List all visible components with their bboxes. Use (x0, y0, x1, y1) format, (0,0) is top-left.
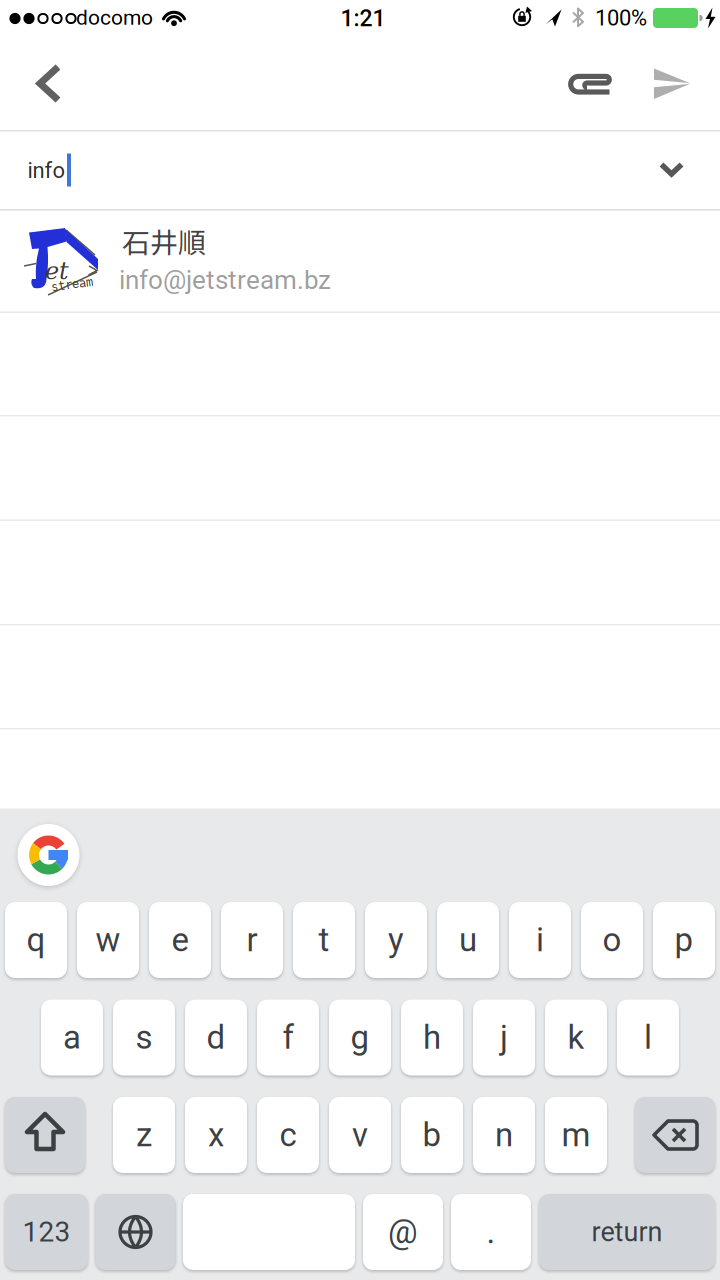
staticText: 123 (22, 1216, 70, 1248)
staticText: d (206, 1018, 225, 1057)
staticText: return (591, 1216, 662, 1248)
button[interactable]: Attach file (557, 54, 617, 114)
staticText: w (95, 921, 120, 959)
button[interactable]: e (149, 902, 211, 978)
button[interactable]: l (617, 999, 679, 1075)
button[interactable]: k (545, 999, 607, 1075)
button[interactable]: a (41, 999, 103, 1075)
staticText: docomo (76, 5, 153, 30)
staticText: n (495, 1116, 513, 1154)
staticText: i (536, 921, 544, 959)
staticText: x (208, 1116, 224, 1154)
staticText: g (350, 1018, 369, 1057)
staticText: t (318, 921, 329, 959)
button[interactable]: z (113, 1097, 175, 1173)
button[interactable]: et (0, 210, 720, 312)
staticText: 石井順 (122, 221, 206, 261)
button[interactable]: d (185, 999, 247, 1075)
button[interactable]: q (5, 902, 67, 978)
button[interactable]: x (185, 1097, 247, 1173)
staticText: m (561, 1116, 590, 1154)
staticText: b (422, 1116, 441, 1154)
staticText: v (352, 1116, 368, 1154)
button[interactable]: m (545, 1097, 607, 1173)
staticText: a (63, 1018, 81, 1057)
button[interactable]: w (77, 902, 139, 978)
button[interactable]: @ (363, 1194, 443, 1270)
staticText: u (459, 921, 477, 959)
staticText: . (486, 1213, 495, 1251)
staticText: l (644, 1018, 652, 1057)
staticText: e (171, 921, 188, 959)
button[interactable]: h (401, 999, 463, 1075)
button[interactable]: Return (539, 1194, 715, 1270)
staticText: p (674, 921, 693, 959)
staticText: h (423, 1018, 441, 1057)
staticText: y (388, 921, 404, 959)
button[interactable]: p (653, 902, 715, 978)
button[interactable]: r (221, 902, 283, 978)
button[interactable]: Shift (5, 1097, 85, 1173)
staticText: o (602, 921, 621, 959)
staticText: 1:21 (340, 5, 385, 32)
button[interactable]: g (329, 999, 391, 1075)
staticText: info (27, 158, 65, 183)
staticText: r (246, 921, 257, 959)
button[interactable]: o (581, 902, 643, 978)
button[interactable]: Send (642, 54, 702, 114)
staticText: @ (388, 1213, 418, 1251)
button[interactable]: Back (19, 53, 79, 113)
staticText: et (45, 257, 69, 285)
staticText: q (26, 921, 45, 959)
button[interactable]: y (365, 902, 427, 978)
button[interactable]: To field (0, 131, 720, 209)
staticText: c (279, 1116, 296, 1154)
button[interactable]: u (437, 902, 499, 978)
button[interactable]: Next keyboard (95, 1194, 175, 1270)
button[interactable]: Numbers (5, 1194, 88, 1270)
button[interactable]: f (257, 999, 319, 1075)
staticText: z (136, 1116, 152, 1154)
staticText: f (282, 1018, 293, 1057)
staticText: 100% (595, 5, 647, 31)
button[interactable]: t (293, 902, 355, 978)
button[interactable]: b (401, 1097, 463, 1173)
button[interactable]: j (473, 999, 535, 1075)
button[interactable]: . (451, 1194, 531, 1270)
staticText: info@jetstream.bz (119, 265, 331, 295)
staticText: s (135, 1018, 152, 1057)
button[interactable]: Delete (635, 1097, 715, 1173)
button[interactable]: n (473, 1097, 535, 1173)
button[interactable]: Expand recipient fields (651, 154, 691, 184)
staticText: j (500, 1018, 508, 1057)
button[interactable]: i (509, 902, 571, 978)
button[interactable]: Google (17, 824, 79, 886)
button[interactable]: s (113, 999, 175, 1075)
staticText: stream (51, 277, 93, 291)
button[interactable]: v (329, 1097, 391, 1173)
button[interactable]: c (257, 1097, 319, 1173)
staticText: k (567, 1018, 584, 1057)
